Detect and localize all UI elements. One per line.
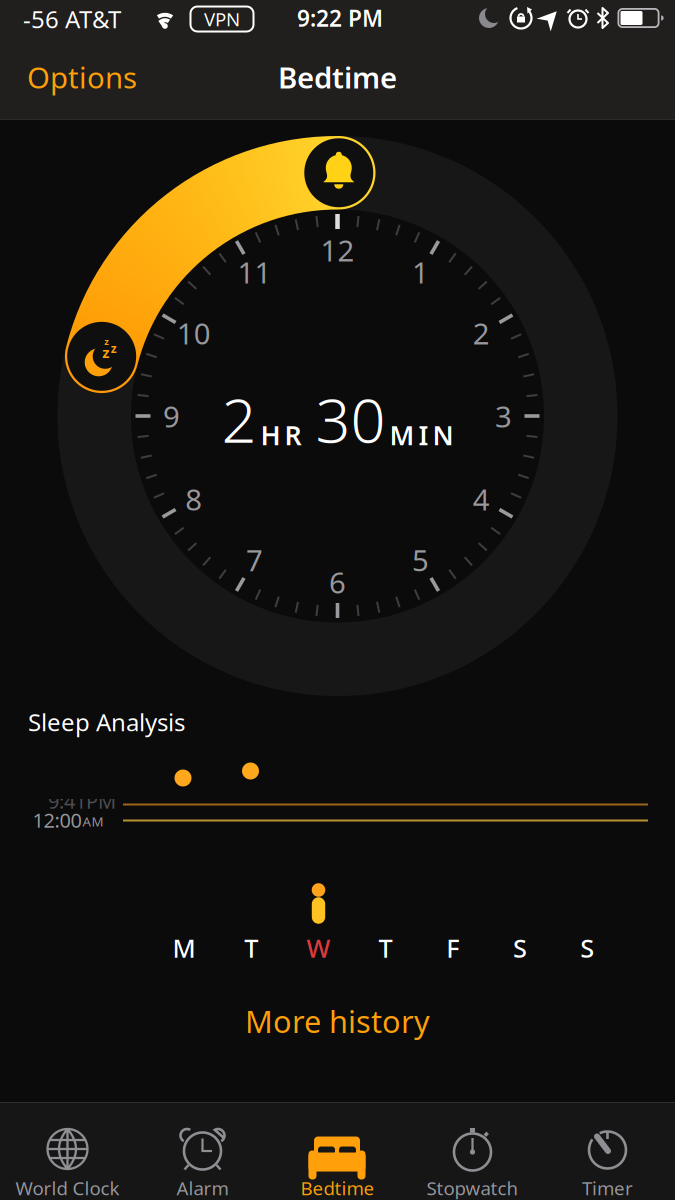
button[interactable]: More history — [225, 989, 450, 1053]
staticText: S — [580, 931, 594, 965]
staticText: 30 — [315, 378, 385, 460]
button[interactable]: Options — [13, 47, 151, 106]
staticText: Bedtime — [278, 57, 397, 96]
staticText: M I N — [389, 417, 453, 453]
staticText: World Clock — [15, 1176, 119, 1200]
staticText: F — [446, 931, 459, 965]
button[interactable]: Alarm — [135, 1103, 269, 1200]
staticText: More history — [245, 1001, 430, 1041]
staticText: 11 — [237, 253, 271, 292]
staticText: 9 — [163, 396, 180, 435]
staticText: 2 — [473, 313, 490, 352]
staticText: 1 — [412, 253, 429, 292]
staticText: H R — [260, 417, 301, 453]
staticText: 9:22 PM — [297, 3, 383, 33]
staticText: W — [306, 931, 330, 965]
staticText: Timer — [582, 1176, 633, 1200]
staticText: 2 — [221, 378, 256, 460]
staticText: 10 — [177, 313, 211, 352]
staticText: 12:00 — [32, 807, 81, 833]
staticText: 12 — [320, 230, 354, 269]
staticText: 6 — [329, 562, 346, 601]
staticText: S — [513, 931, 527, 965]
staticText: 7 — [246, 540, 263, 579]
staticText: Bedtime — [300, 1176, 374, 1200]
staticText: 9:41PM — [48, 788, 116, 814]
staticText: AM — [82, 813, 103, 830]
staticText: T — [379, 931, 393, 965]
staticText: -56 AT&T — [23, 3, 121, 35]
button[interactable]: Stopwatch — [405, 1103, 539, 1200]
staticText: VPN — [204, 7, 240, 31]
staticText: 8 — [185, 479, 202, 518]
staticText: Alarm — [176, 1176, 228, 1200]
staticText: Stopwatch — [426, 1176, 518, 1200]
staticText: z — [102, 343, 109, 362]
button[interactable]: World Clock — [0, 1103, 134, 1200]
staticText: Options — [27, 57, 137, 96]
staticText: 4 — [473, 479, 490, 518]
staticText: 5 — [412, 540, 429, 579]
staticText: Sleep Analysis — [28, 706, 185, 738]
staticText: T — [244, 931, 258, 965]
staticText: z — [111, 340, 117, 356]
staticText: z — [104, 335, 109, 347]
staticText: M — [172, 931, 195, 965]
button[interactable]: Timer — [540, 1103, 674, 1200]
button[interactable]: Wake time — [302, 136, 375, 209]
button[interactable]: Bedtime — [270, 1103, 404, 1200]
button[interactable]: Bedtime — [65, 320, 138, 393]
staticText: 3 — [495, 396, 512, 435]
